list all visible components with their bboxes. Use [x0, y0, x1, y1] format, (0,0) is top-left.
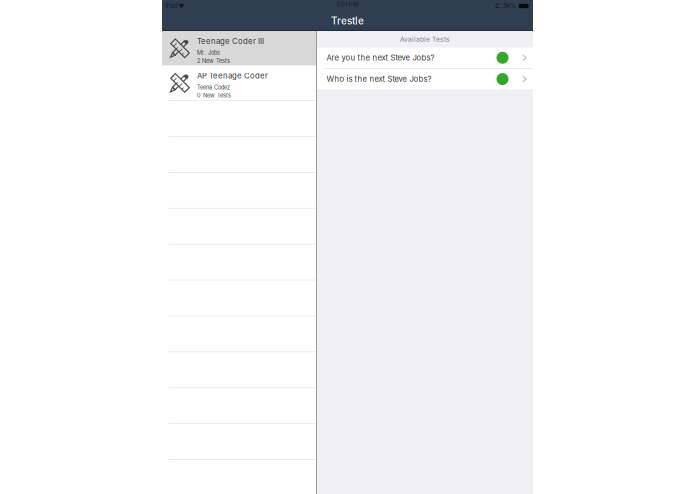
staticText: 0 New Tests: [197, 92, 231, 99]
staticText: AP Teenage Coder: [197, 71, 268, 80]
staticText: Are you the next Steve Jobs?: [326, 53, 434, 62]
staticText: 1:01 PM: [337, 1, 358, 8]
button[interactable]: AP Teenage Coder: [162, 66, 316, 100]
staticText: Trestle: [331, 15, 364, 27]
staticText: 94%: [503, 3, 515, 9]
staticText: 2 New Tests: [197, 58, 230, 64]
staticText: iPad: [165, 3, 176, 9]
button[interactable]: Who is the next Steve Jobs?: [317, 69, 533, 89]
staticText: Available Tests: [400, 35, 450, 43]
staticText: Mr. Jobs: [197, 49, 220, 56]
button[interactable]: Teenage Coder III: [162, 31, 316, 66]
staticText: Teena Codez: [197, 84, 230, 91]
staticText: Teenage Coder III: [197, 36, 264, 46]
staticText: Who is the next Steve Jobs?: [326, 74, 431, 84]
button[interactable]: Are you the next Steve Jobs?: [317, 47, 533, 68]
